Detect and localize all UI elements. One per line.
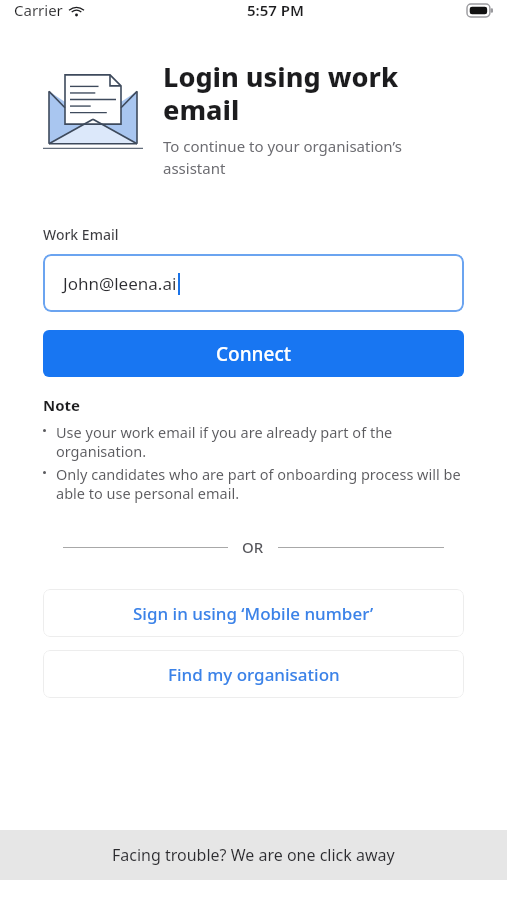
other: Battery full xyxy=(467,4,493,17)
staticText: Sign in using ‘Mobile number’ xyxy=(133,602,374,625)
button[interactable]: John@leena.ai xyxy=(43,254,464,312)
staticText: OR xyxy=(242,537,264,557)
staticText: Work Email xyxy=(43,225,119,244)
staticText: Note xyxy=(43,395,81,415)
button[interactable]: Connect xyxy=(43,330,464,377)
staticText: Carrier xyxy=(14,0,63,20)
staticText: Only candidates who are part of onboardi… xyxy=(56,464,464,503)
staticText: Find my organisation xyxy=(168,663,340,686)
staticText: Login using work email xyxy=(163,58,464,128)
staticText: Connect xyxy=(216,341,292,367)
staticText: Facing trouble? We are one click away xyxy=(112,844,395,866)
staticText: To continue to your organisation’s assis… xyxy=(163,136,464,179)
staticText: Use your work email if you are already p… xyxy=(56,422,464,461)
staticText: 5:57 PM xyxy=(247,0,304,20)
staticText: John@leena.ai xyxy=(63,272,177,295)
button[interactable]: Find my organisation xyxy=(43,650,464,698)
button[interactable]: Sign in using ‘Mobile number’ xyxy=(43,589,464,637)
button[interactable]: Facing trouble? We are one click away xyxy=(0,830,507,880)
